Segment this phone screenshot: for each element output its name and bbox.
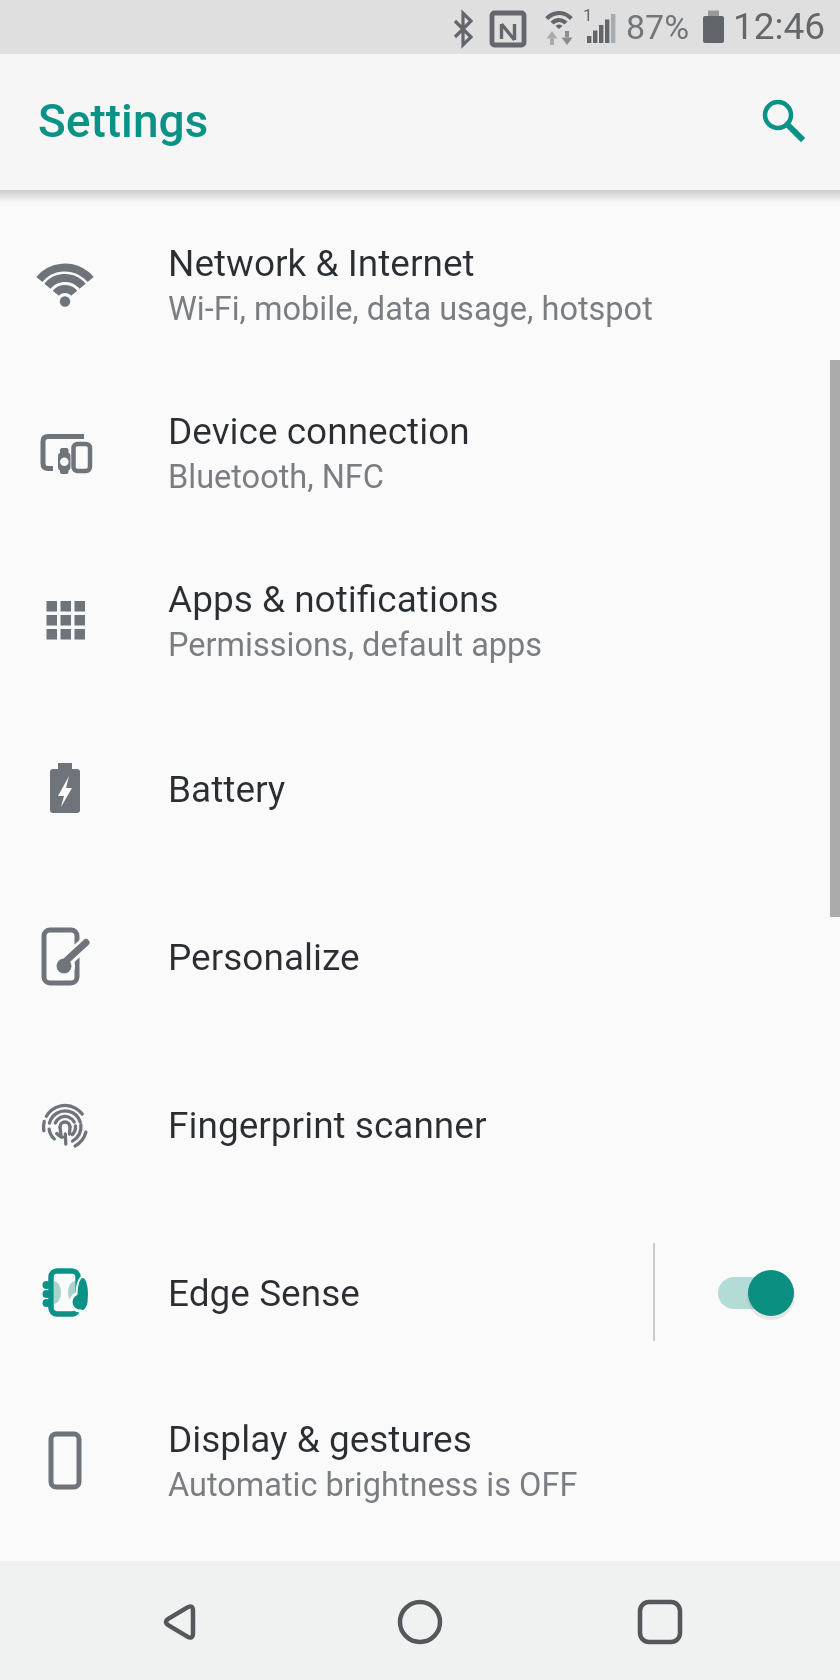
button[interactable] xyxy=(748,92,808,152)
staticText: 87% xyxy=(626,7,690,47)
staticText: 12:46 xyxy=(733,5,826,48)
button[interactable] xyxy=(133,1575,223,1665)
staticText: 1 xyxy=(583,5,593,25)
staticText: Network & Internet xyxy=(168,242,475,285)
staticText: Automatic brightness is OFF xyxy=(168,1466,578,1504)
button[interactable]: Device connection xyxy=(0,369,840,537)
staticText: Battery xyxy=(168,768,286,811)
staticText: Settings xyxy=(38,94,209,148)
staticText: Fingerprint scanner xyxy=(168,1104,487,1147)
staticText: Bluetooth, NFC xyxy=(168,458,384,496)
button[interactable]: Display & gestures xyxy=(0,1377,840,1545)
staticText: Edge Sense xyxy=(168,1272,360,1315)
button[interactable] xyxy=(375,1575,465,1665)
button[interactable] xyxy=(615,1575,705,1665)
staticText: Device connection xyxy=(168,410,470,453)
button[interactable]: Personalize xyxy=(0,873,840,1041)
staticText: Permissions, default apps xyxy=(168,626,543,664)
button[interactable] xyxy=(706,1257,806,1329)
button[interactable]: Fingerprint scanner xyxy=(0,1041,840,1209)
button[interactable]: Network & Internet xyxy=(0,201,840,369)
staticText: Personalize xyxy=(168,936,360,979)
button[interactable]: Battery xyxy=(0,705,840,873)
staticText: Apps & notifications xyxy=(168,578,499,621)
button[interactable]: Apps & notifications xyxy=(0,537,840,705)
staticText: Wi-Fi, mobile, data usage, hotspot xyxy=(168,290,653,328)
button[interactable]: Edge Sense xyxy=(0,1209,840,1377)
staticText: Display & gestures xyxy=(168,1418,472,1461)
